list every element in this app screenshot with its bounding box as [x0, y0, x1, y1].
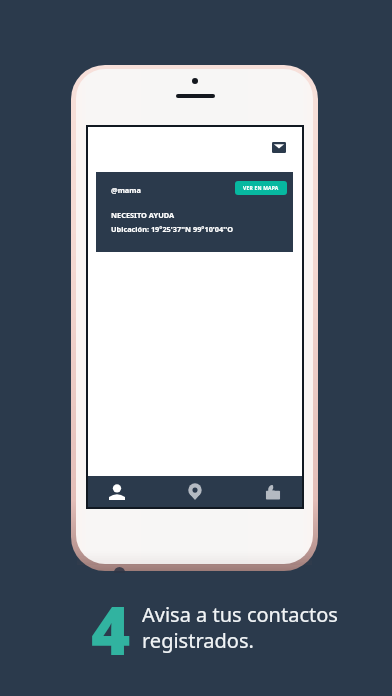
staticText: 4	[91, 583, 131, 674]
staticText: Ubicación: 19°25'37''N 99°10'04''O	[111, 224, 233, 234]
button[interactable]: Mapa	[178, 476, 212, 507]
button[interactable]: Contactos	[100, 476, 134, 507]
button[interactable]: VER EN MAPA	[235, 181, 287, 195]
staticText: VER EN MAPA	[243, 185, 279, 192]
staticText: Avisa a tus contactos registrados.	[142, 601, 372, 654]
staticText: @mama	[111, 185, 141, 195]
button[interactable]: @mama	[96, 172, 293, 252]
button[interactable]: Me gusta	[256, 476, 290, 507]
staticText: NECESITO AYUDA	[111, 210, 175, 220]
button[interactable]: Mensajes	[268, 136, 290, 158]
